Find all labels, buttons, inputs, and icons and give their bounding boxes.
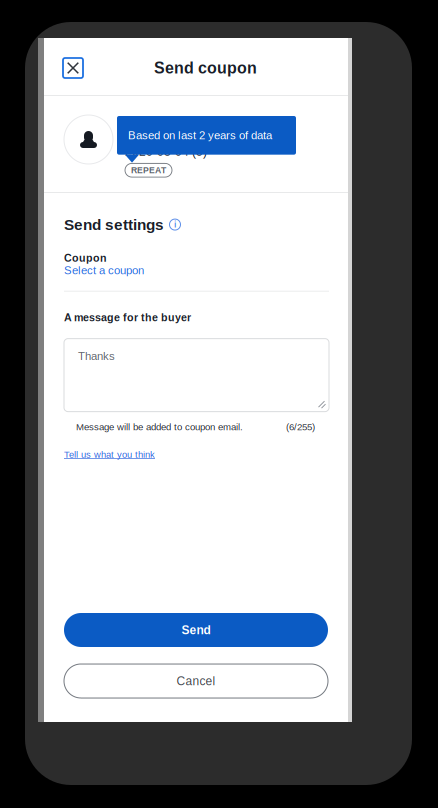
staticText: Thanks [78,350,115,362]
staticText: A message for the buyer [64,312,191,324]
button[interactable]: Close [63,58,83,78]
staticText: Send coupon [154,59,257,77]
staticText: Cancel [176,674,215,688]
staticText: i [174,220,176,229]
button[interactable]: Select a coupon [44,264,144,277]
staticText: Send settings [64,216,164,233]
button[interactable]: Cancel [64,664,328,698]
staticText: Based on last 2 years of data [128,129,272,142]
staticText: (6/255) [286,422,315,432]
staticText: Send [181,623,210,637]
staticText: Message will be added to coupon email. [76,422,243,432]
staticText: Select a coupon [64,264,144,277]
button[interactable]: Tell us what you think [44,449,155,460]
button[interactable]: Send [64,613,328,647]
staticText: 2020-03-04 (5) [125,145,207,158]
staticText: Tell us what you think [64,449,155,460]
staticText: Coupon [64,252,107,264]
staticText: REPEAT [131,165,166,175]
